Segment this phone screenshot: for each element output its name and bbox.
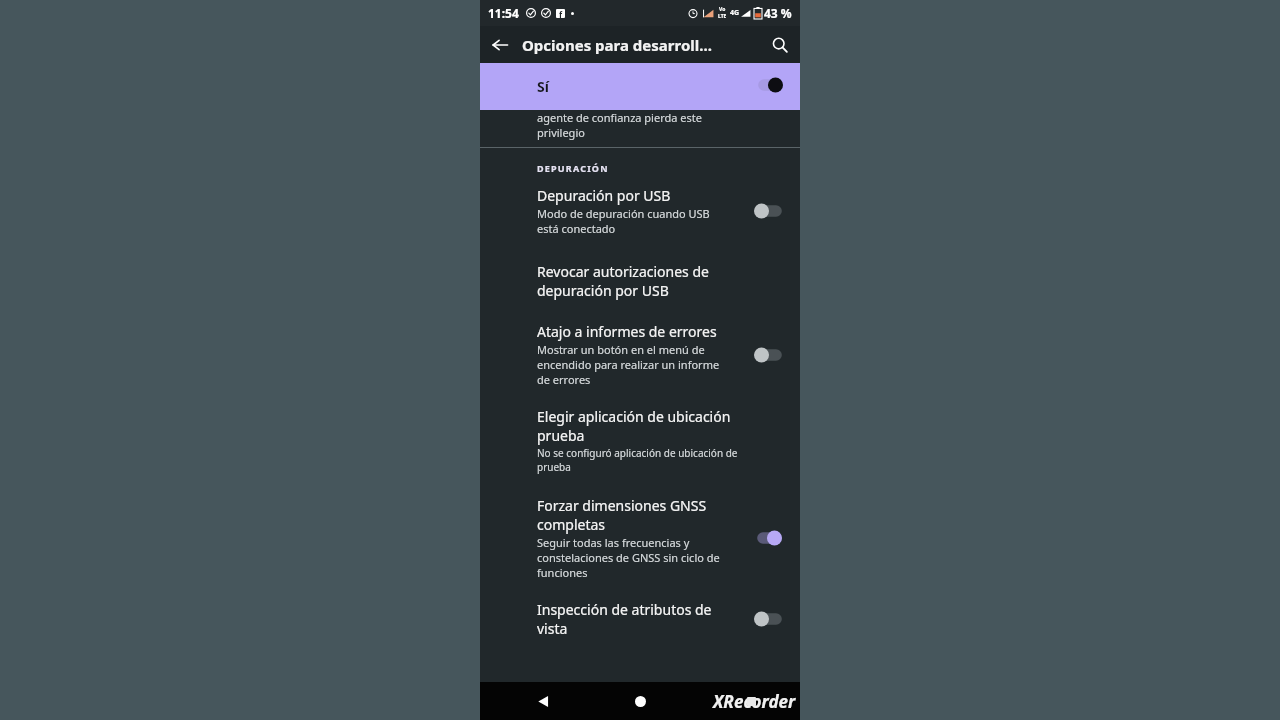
button[interactable]: Atrás	[480, 26, 520, 63]
button[interactable]: Activado	[754, 77, 784, 93]
staticText: Modo de depuración cuando USB	[537, 206, 710, 221]
staticText: constelaciones de GNSS sin ciclo de	[537, 550, 720, 565]
staticText: Forzar dimensiones GNSS	[537, 496, 707, 515]
staticText: Opciones para desarroll...	[522, 35, 712, 55]
staticText: No se configuró aplicación de ubicación …	[537, 446, 738, 460]
staticText: funciones	[537, 565, 588, 580]
button[interactable]: Desactivado	[753, 203, 783, 219]
staticText: LTE	[718, 13, 727, 20]
button[interactable]: Forzar dimensiones GNSS	[480, 496, 800, 580]
staticText: Vo	[719, 6, 726, 13]
staticText: Elegir aplicación de ubicación de	[537, 407, 742, 426]
button[interactable]: Desactivado	[753, 347, 783, 363]
staticText: de errores	[537, 372, 591, 387]
staticText: está conectado	[537, 221, 616, 236]
staticText: privilegio	[537, 125, 585, 140]
staticText: Inspección de atributos de	[537, 600, 712, 619]
button[interactable]: Inspección de atributos de	[480, 600, 800, 638]
button[interactable]: Activado	[753, 530, 783, 546]
button[interactable]: agente de confianza pierda este	[480, 110, 800, 147]
button[interactable]: Inicio	[627, 688, 653, 714]
staticText: 43 %	[764, 5, 792, 21]
staticText: Atajo a informes de errores	[537, 322, 717, 341]
button[interactable]: Revocar autorizaciones de	[480, 262, 800, 300]
staticText: agente de confianza pierda este	[537, 110, 702, 125]
staticText: DEPURACIÓN	[537, 162, 609, 174]
staticText: depuración por USB	[537, 281, 669, 300]
staticText: vista	[537, 619, 568, 638]
button[interactable]: Desactivado	[753, 611, 783, 627]
button[interactable]: Buscar	[760, 26, 800, 63]
staticText: Revocar autorizaciones de	[537, 262, 709, 281]
staticText: 11:54	[488, 5, 519, 21]
staticText: f	[559, 9, 563, 18]
staticText: prueba	[537, 460, 571, 474]
staticText: prueba	[537, 426, 585, 445]
staticText: XRecorder	[713, 690, 796, 713]
button[interactable]: Sí	[480, 63, 800, 110]
staticText: Depuración por USB	[537, 186, 671, 205]
staticText: Seguir todas las frecuencias y	[537, 535, 690, 550]
button[interactable]: Atajo a informes de errores	[480, 322, 800, 387]
button[interactable]: Elegir aplicación de ubicación de	[480, 407, 800, 474]
button[interactable]: Depuración por USB	[480, 186, 800, 236]
staticText: 4G	[730, 8, 740, 18]
staticText: completas	[537, 515, 606, 534]
staticText: Mostrar un botón en el menú de	[537, 342, 705, 357]
staticText: encendido para realizar un informe	[537, 357, 720, 372]
staticText: Sí	[537, 77, 549, 96]
button[interactable]: Atrás	[530, 688, 556, 714]
